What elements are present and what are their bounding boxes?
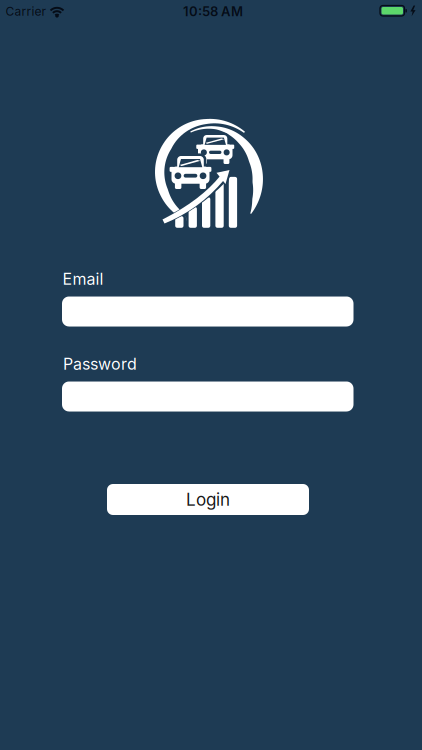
button[interactable]: Email — [62, 296, 353, 326]
button[interactable]: Password — [62, 381, 353, 411]
staticText: Email — [62, 269, 103, 289]
staticText: Carrier — [5, 4, 46, 19]
staticText: Password — [63, 354, 137, 374]
staticText: Login — [186, 489, 230, 510]
staticText: 10:58 AM — [183, 4, 243, 19]
button[interactable]: Login — [107, 484, 309, 515]
